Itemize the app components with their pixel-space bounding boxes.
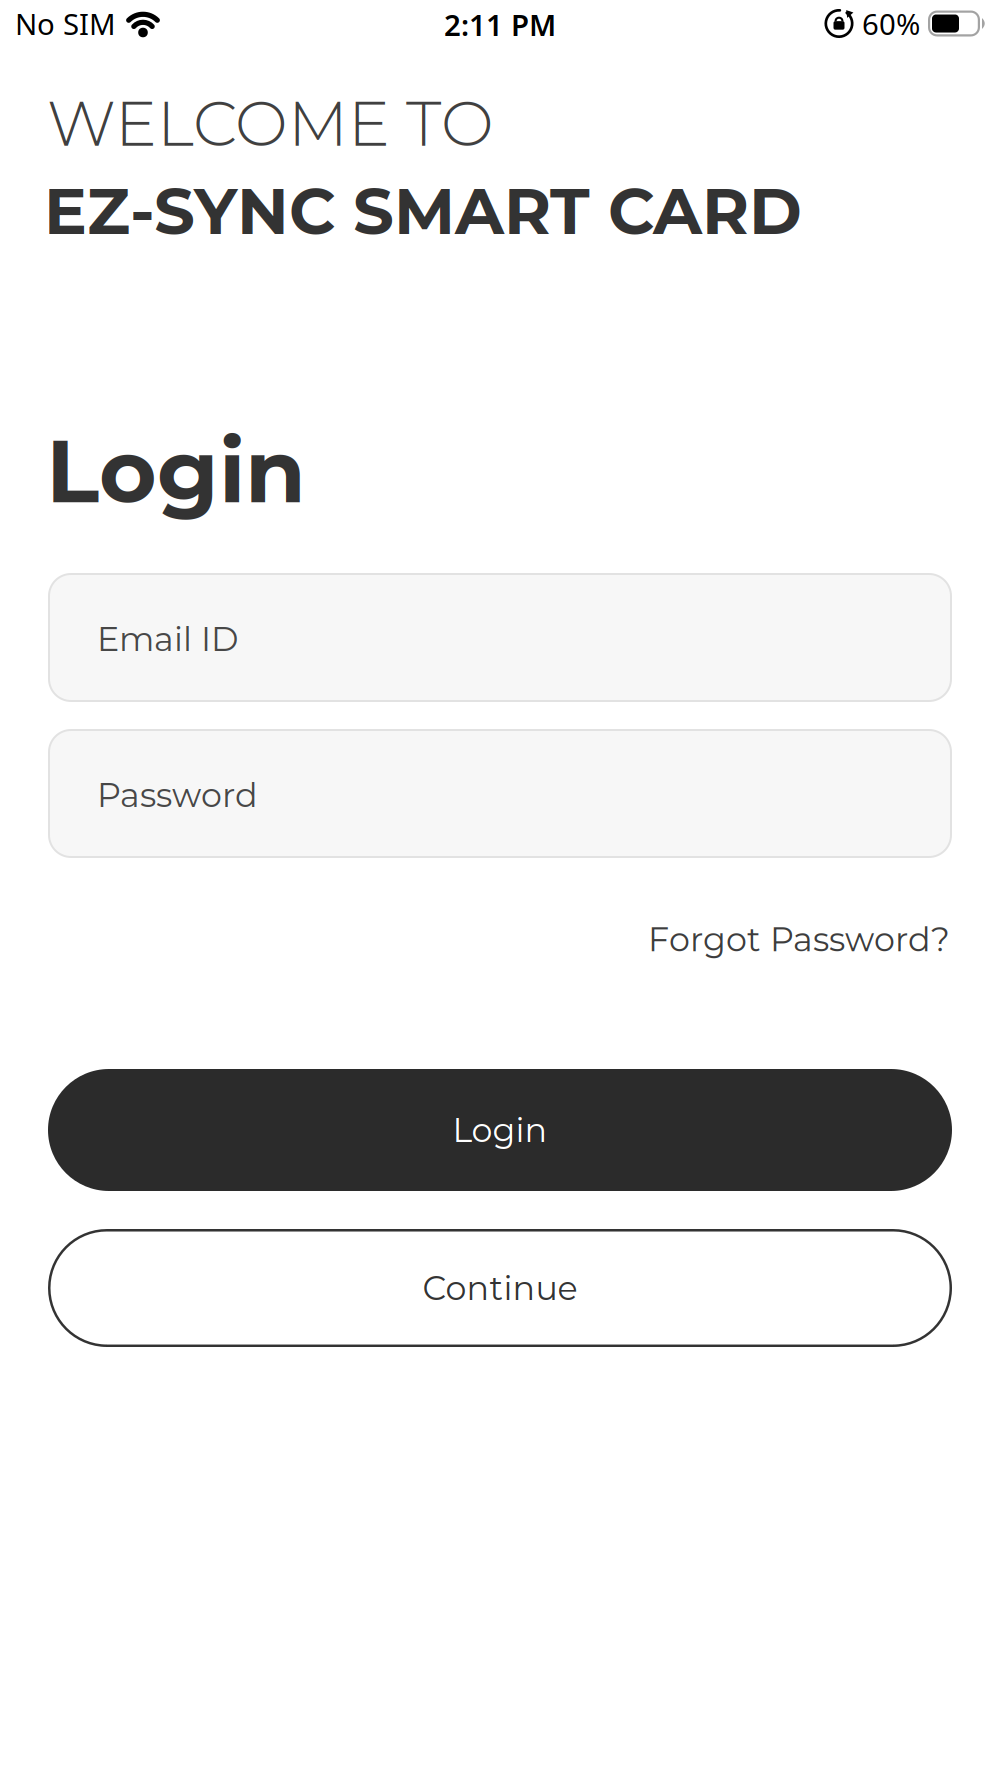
staticText: Login xyxy=(46,417,306,524)
button[interactable]: Password xyxy=(48,729,952,858)
staticText: WELCOME TO xyxy=(47,85,494,161)
button[interactable]: Continue xyxy=(48,1229,952,1347)
staticText: Password xyxy=(97,775,258,815)
button[interactable]: Forgot Password? xyxy=(648,919,950,960)
staticText: EZ-SYNC SMART CARD xyxy=(44,172,802,250)
button[interactable]: Email ID xyxy=(48,573,952,702)
staticText: Continue xyxy=(422,1268,577,1308)
staticText: 60% xyxy=(862,4,920,43)
staticText: No SIM xyxy=(15,4,116,43)
staticText: Login xyxy=(452,1110,547,1150)
staticText: 2:11 PM xyxy=(444,5,556,44)
staticText: Email ID xyxy=(97,619,239,659)
button[interactable]: Login xyxy=(48,1069,952,1191)
staticText: Forgot Password? xyxy=(648,919,950,960)
